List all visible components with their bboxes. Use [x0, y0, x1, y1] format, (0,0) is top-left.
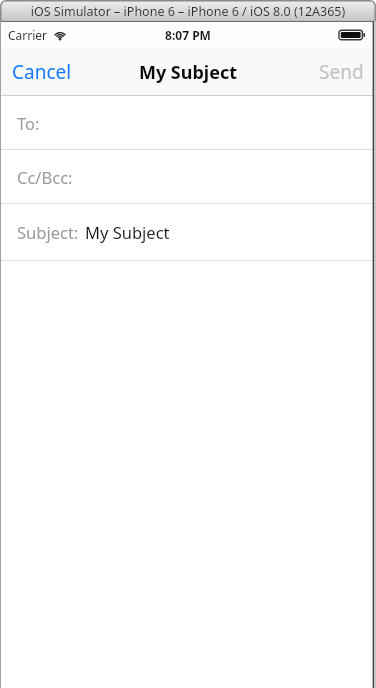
staticText: 8:07 PM	[0, 27, 376, 43]
staticText: My Subject	[0, 60, 376, 85]
staticText: Cancel	[12, 59, 72, 85]
staticText: Cc/Bcc:	[17, 166, 73, 188]
button[interactable]: Cancel	[0, 48, 84, 96]
staticText: Send	[319, 59, 364, 85]
other: Wi-Fi signal	[53, 30, 67, 41]
button[interactable]: Cc/Bcc:	[0, 150, 376, 204]
button[interactable]: Subject:	[0, 204, 376, 261]
staticText: My Subject	[85, 221, 170, 243]
staticText: Carrier	[8, 27, 48, 43]
staticText: Subject:	[17, 221, 79, 243]
button[interactable]: Send	[307, 48, 376, 96]
staticText: To:	[17, 112, 40, 134]
other: Battery full	[339, 29, 365, 41]
staticText: iOS Simulator – iPhone 6 – iPhone 6 / iO…	[0, 3, 376, 20]
button[interactable]: To:	[0, 96, 376, 150]
